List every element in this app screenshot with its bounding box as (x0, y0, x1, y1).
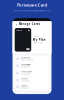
staticText: Transactions (21, 71, 32, 73)
button[interactable]: Support (15, 83, 49, 90)
button[interactable]: Card details (15, 55, 49, 62)
button[interactable]: Back (15, 22, 17, 26)
staticText: Security (21, 78, 28, 80)
staticText: My Plan (33, 38, 46, 41)
staticText: Card details (21, 57, 30, 59)
staticText: Spending limits (21, 64, 31, 66)
staticText: Manage Cards (19, 22, 40, 26)
staticText: Get help fast (21, 87, 28, 89)
staticText: Support (21, 85, 28, 87)
staticText: View card number (21, 59, 34, 61)
staticText: Thrivecare Card (16, 2, 47, 8)
staticText: Your card (33, 36, 41, 37)
button[interactable]: Spending limits (15, 62, 49, 69)
staticText: Pieces of care, flexible and simple, in … (13, 10, 50, 12)
staticText: Monthly caps (21, 66, 30, 68)
staticText: Recent activity (21, 73, 30, 75)
button[interactable]: Security (15, 76, 49, 83)
button[interactable]: Transactions (15, 69, 49, 76)
staticText: Valid thru 09/29 (33, 42, 43, 44)
staticText: Lock & alerts (21, 80, 30, 82)
staticText: THRIVE (16, 30, 22, 31)
